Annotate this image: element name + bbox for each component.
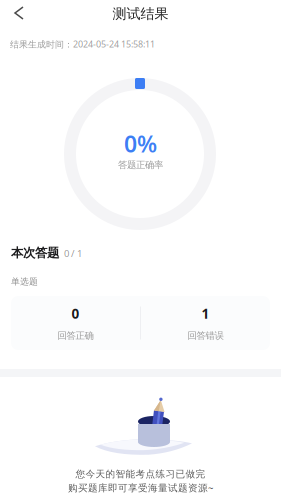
staticText: 结果生成时间：2024-05-24 15:58:11 (10, 38, 155, 50)
staticText: 测试结果 (112, 5, 168, 23)
button[interactable]: 返回 (0, 0, 39, 26)
staticText: 0 (71, 304, 79, 323)
staticText: 回答正确 (57, 330, 93, 342)
staticText: 您今天的智能考点练习已做完 (75, 468, 205, 480)
staticText: 0 / 1 (64, 247, 82, 260)
staticText: 购买题库即可享受海量试题资源~ (68, 481, 213, 494)
staticText: 单选题 (11, 276, 38, 287)
staticText: 答题正确率 (118, 159, 163, 171)
staticText: 本次答题 (11, 245, 59, 261)
staticText: 回答错误 (187, 330, 223, 342)
staticText: 0% (124, 128, 157, 159)
staticText: 1 (201, 304, 209, 323)
